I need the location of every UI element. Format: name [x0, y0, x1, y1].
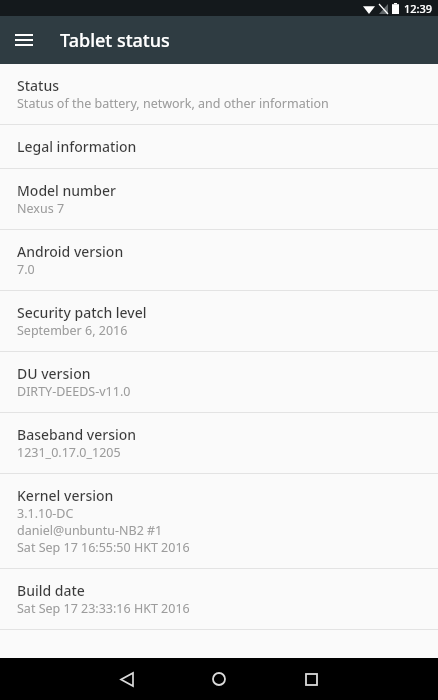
button[interactable]: Home	[185, 658, 253, 700]
staticText: September 6, 2016	[17, 322, 128, 339]
button[interactable]: Android version	[0, 230, 438, 290]
staticText: Sat Sep 17 16:55:50 HKT 2016	[17, 539, 190, 556]
staticText: Nexus 7	[17, 200, 65, 217]
staticText: Status of the battery, network, and othe…	[17, 95, 329, 112]
button[interactable]: Build date	[0, 569, 438, 629]
staticText: Sat Sep 17 23:33:16 HKT 2016	[17, 600, 190, 617]
staticText: 12:39	[404, 1, 433, 16]
staticText: Legal information	[17, 137, 137, 156]
button[interactable]: Recent apps	[277, 658, 345, 700]
staticText: 1231_0.17.0_1205	[17, 444, 121, 461]
staticText: Android version	[17, 242, 124, 261]
button[interactable]: Security patch level	[0, 291, 438, 351]
staticText: Security patch level	[17, 303, 147, 322]
button[interactable]: Kernel version	[0, 474, 438, 568]
button[interactable]: Open navigation menu	[0, 16, 48, 64]
staticText: Model number	[17, 181, 116, 200]
staticText: Status	[17, 76, 60, 95]
staticText: DIRTY-DEEDS-v11.0	[17, 383, 131, 400]
staticText: Tablet status	[60, 28, 170, 53]
button[interactable]: DU version	[0, 352, 438, 412]
staticText: 7.0	[17, 261, 35, 278]
staticText: DU version	[17, 364, 91, 383]
staticText: 3.1.10-DC	[17, 505, 74, 522]
button[interactable]: Status	[0, 64, 438, 124]
button[interactable]: Back	[93, 658, 161, 700]
button[interactable]: Model number	[0, 169, 438, 229]
staticText: Build date	[17, 581, 85, 600]
staticText: Kernel version	[17, 486, 114, 505]
button[interactable]: Baseband version	[0, 413, 438, 473]
staticText: Baseband version	[17, 425, 137, 444]
button[interactable]: Legal information	[0, 125, 438, 168]
staticText: daniel@unbuntu-NB2 #1	[17, 522, 163, 539]
